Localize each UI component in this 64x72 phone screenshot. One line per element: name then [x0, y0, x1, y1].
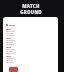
staticText: MATCH [22, 3, 40, 9]
staticText: GROUND [20, 9, 42, 15]
button[interactable]: Primary action [9, 67, 18, 72]
